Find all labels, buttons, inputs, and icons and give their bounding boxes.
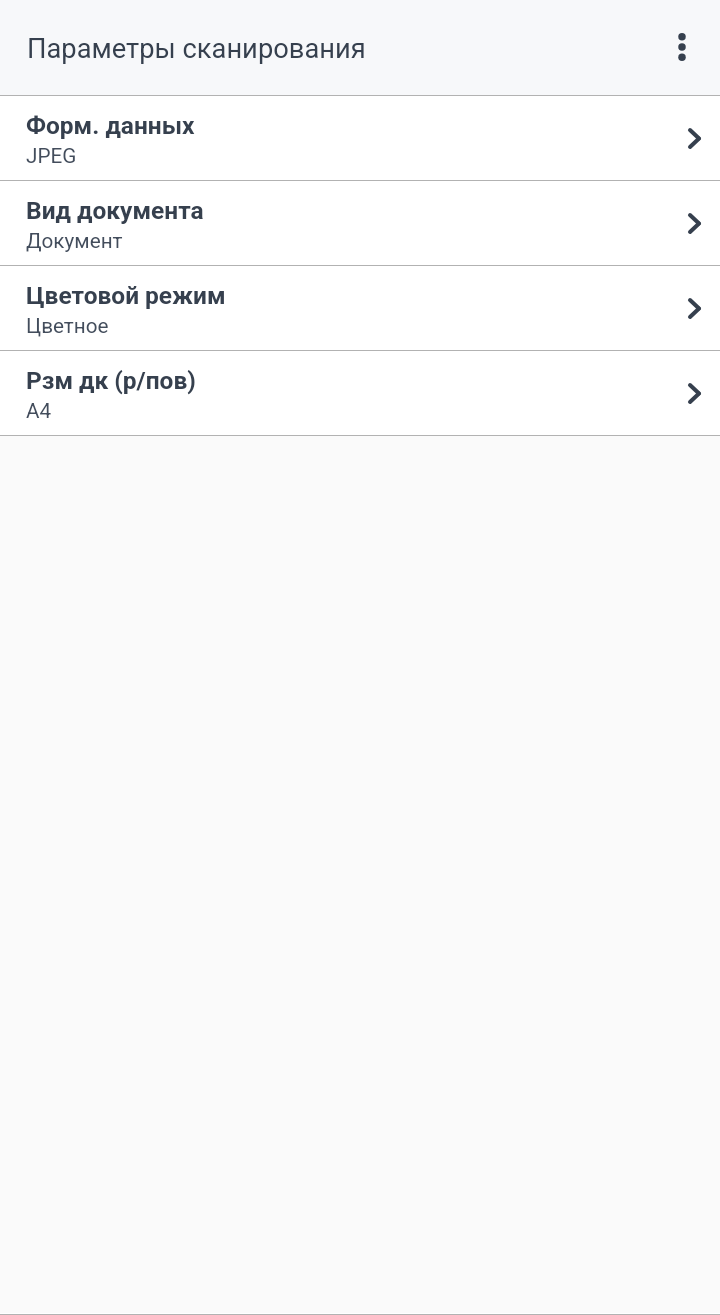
button[interactable]: More options <box>650 15 714 79</box>
button[interactable]: Цветовой режим <box>0 266 720 351</box>
button[interactable]: Рзм дк (р/пов) <box>0 351 720 436</box>
staticText: Параметры сканирования <box>27 33 366 65</box>
staticText: A4 <box>26 399 52 423</box>
staticText: Форм. данных <box>26 111 195 140</box>
button[interactable]: Вид документа <box>0 181 720 266</box>
staticText: Цветное <box>26 314 109 338</box>
button[interactable]: Форм. данных <box>0 96 720 181</box>
staticText: JPEG <box>26 144 77 168</box>
staticText: Цветовой режим <box>26 281 226 310</box>
staticText: Документ <box>26 229 123 253</box>
staticText: Рзм дк (р/пов) <box>26 366 196 395</box>
staticText: Вид документа <box>26 196 204 225</box>
